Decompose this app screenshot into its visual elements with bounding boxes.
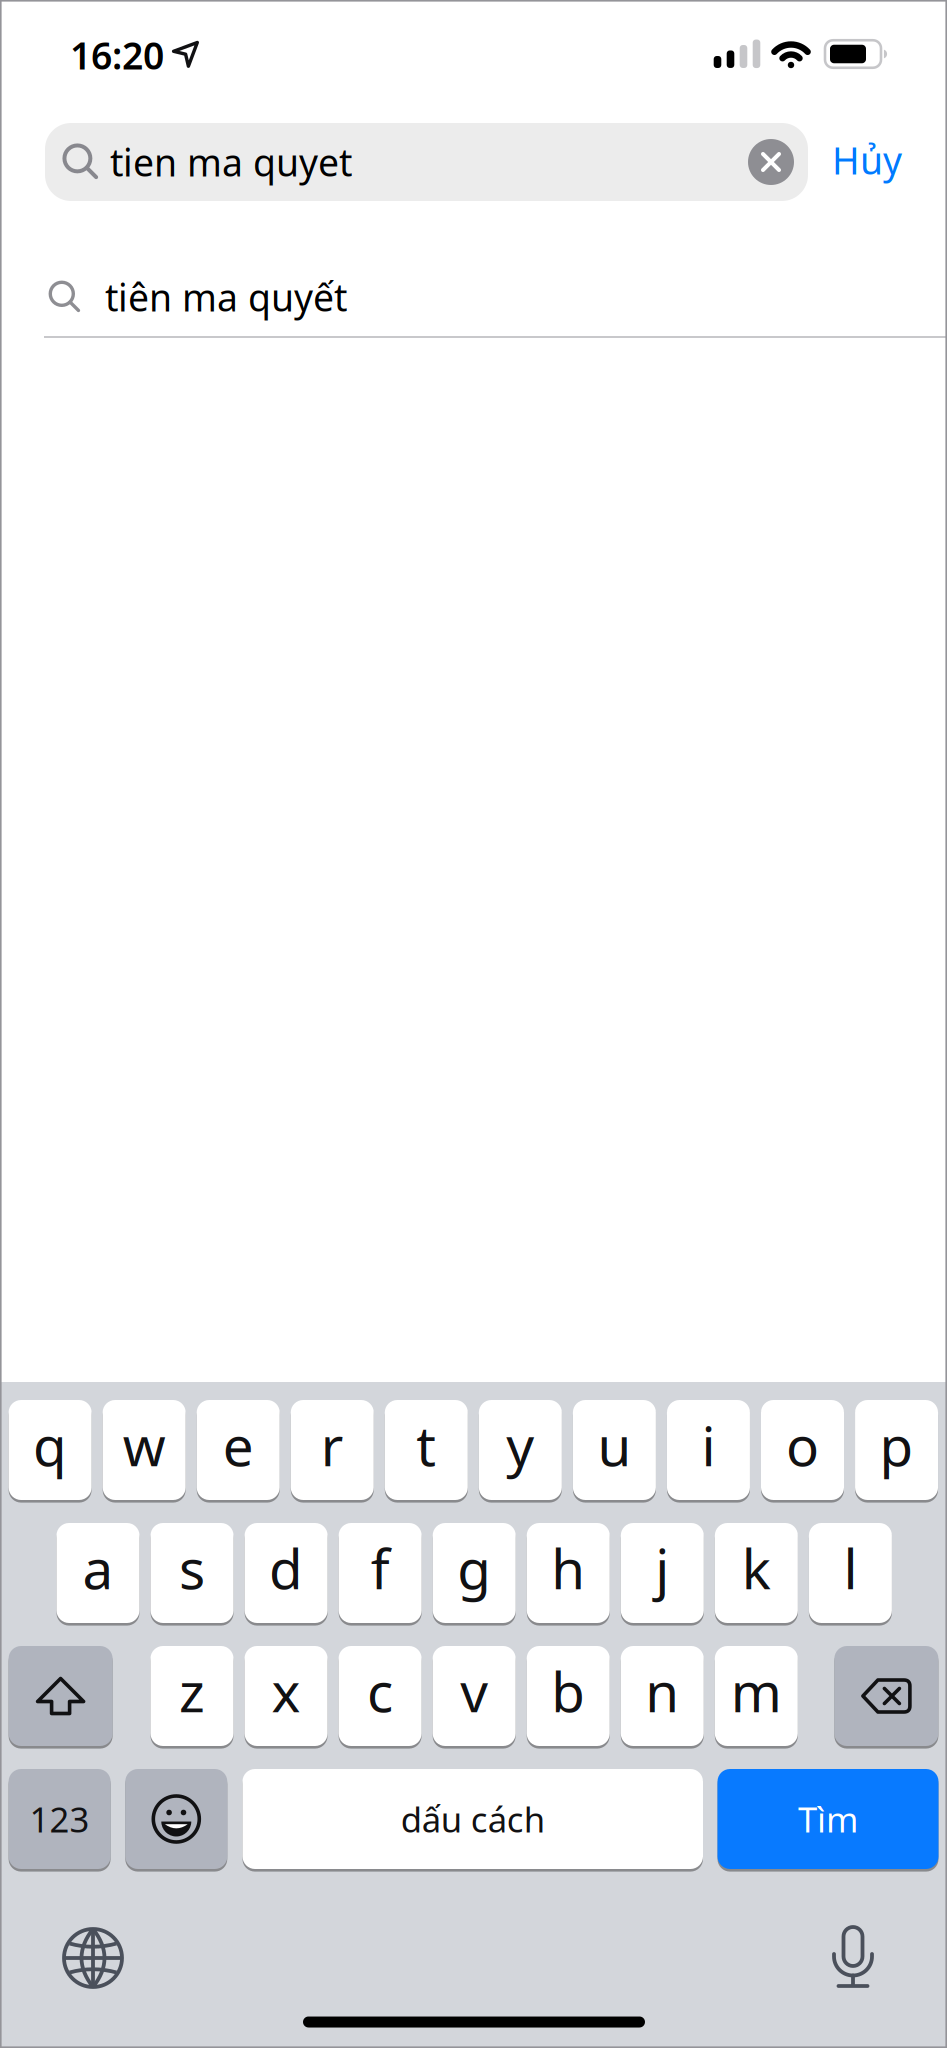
button[interactable]: i	[667, 1400, 750, 1500]
button[interactable]: u	[573, 1400, 656, 1500]
button[interactable]: Delete	[834, 1646, 938, 1746]
button[interactable]: f	[339, 1523, 422, 1623]
button[interactable]: Tìm	[717, 1769, 938, 1869]
button[interactable]: h	[527, 1523, 610, 1623]
button[interactable]: v	[433, 1646, 516, 1746]
button[interactable]: k	[715, 1523, 798, 1623]
staticText: t	[416, 1409, 436, 1481]
button[interactable]: x	[245, 1646, 328, 1746]
staticText: m	[731, 1655, 782, 1727]
button[interactable]: Clear text	[748, 139, 794, 185]
staticText: e	[223, 1409, 254, 1481]
button[interactable]: r	[291, 1400, 374, 1500]
staticText: u	[597, 1409, 631, 1481]
staticText: o	[786, 1409, 819, 1481]
staticText: f	[371, 1532, 390, 1604]
button[interactable]: q	[9, 1400, 92, 1500]
button[interactable]: y	[479, 1400, 562, 1500]
button[interactable]: c	[339, 1646, 422, 1746]
button[interactable]: dấu cách	[242, 1769, 703, 1869]
staticText: i	[701, 1409, 715, 1481]
button[interactable]: s	[151, 1523, 234, 1623]
button[interactable]: o	[761, 1400, 844, 1500]
button[interactable]: b	[527, 1646, 610, 1746]
staticText: d	[269, 1532, 303, 1604]
button[interactable]: tien ma quyet	[45, 123, 808, 201]
button[interactable]: n	[621, 1646, 704, 1746]
button[interactable]: m	[715, 1646, 798, 1746]
staticText: z	[179, 1655, 205, 1727]
staticText: w	[123, 1409, 166, 1481]
staticText: n	[645, 1655, 679, 1727]
button[interactable]: g	[433, 1523, 516, 1623]
button[interactable]: Shift	[9, 1646, 113, 1746]
staticText: g	[457, 1532, 491, 1604]
button[interactable]: w	[103, 1400, 186, 1500]
button[interactable]: j	[621, 1523, 704, 1623]
staticText: r	[321, 1409, 344, 1481]
staticText: v	[460, 1655, 488, 1727]
staticText: s	[179, 1532, 205, 1604]
button[interactable]: l	[809, 1523, 892, 1623]
staticText: a	[82, 1532, 113, 1604]
button[interactable]: Emoji	[125, 1769, 227, 1869]
staticText: k	[742, 1532, 771, 1604]
button[interactable]: a	[56, 1523, 139, 1623]
staticText: h	[551, 1532, 585, 1604]
staticText: x	[272, 1655, 301, 1727]
button[interactable]: Next keyboard	[61, 1926, 125, 1990]
button[interactable]: t	[385, 1400, 468, 1500]
button[interactable]: d	[245, 1523, 328, 1623]
button[interactable]: tiên ma quyết	[49, 252, 946, 342]
button[interactable]: p	[855, 1400, 938, 1500]
button[interactable]: e	[197, 1400, 280, 1500]
button[interactable]: Hủy	[832, 135, 902, 185]
staticText: dấu cách	[401, 1796, 545, 1842]
button[interactable]: Numbers	[9, 1769, 111, 1869]
staticText: b	[551, 1655, 585, 1727]
staticText: 16:20	[70, 30, 164, 80]
staticText: tiên ma quyết	[105, 272, 347, 322]
staticText: tien ma quyet	[110, 137, 352, 187]
staticText: y	[506, 1409, 534, 1481]
staticText: Tìm	[798, 1796, 858, 1842]
button[interactable]: z	[150, 1646, 233, 1746]
staticText: l	[843, 1532, 857, 1604]
staticText: c	[367, 1655, 393, 1727]
button[interactable]: Dictation	[831, 1925, 875, 1991]
staticText: j	[655, 1532, 669, 1604]
staticText: 123	[30, 1796, 90, 1842]
staticText: p	[879, 1409, 913, 1481]
staticText: q	[33, 1409, 67, 1481]
staticText: Hủy	[832, 135, 902, 185]
